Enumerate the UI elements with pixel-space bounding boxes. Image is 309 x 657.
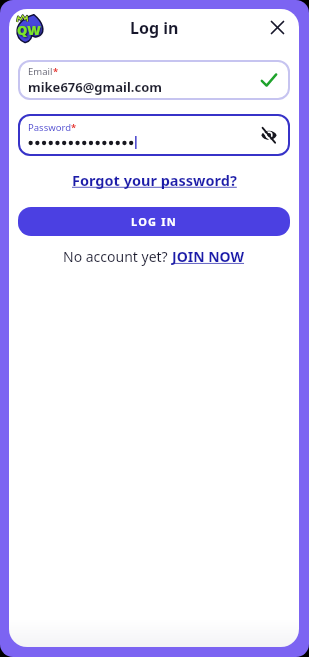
staticText: Log in [130, 17, 179, 39]
button[interactable]: Email [18, 60, 290, 100]
staticText: No account yet? [63, 247, 172, 266]
button[interactable]: Forgot your password? [72, 170, 237, 190]
staticText: LOG IN [131, 214, 177, 229]
button[interactable]: JOIN NOW [172, 247, 245, 266]
staticText: Password [28, 121, 71, 134]
staticText: Email [28, 65, 53, 78]
button[interactable] [270, 20, 285, 35]
staticText: * [71, 121, 77, 134]
staticText: mike676@gmail.com [28, 78, 162, 96]
staticText: * [53, 65, 59, 78]
button[interactable]: Password [18, 114, 290, 156]
button[interactable]: LOG IN [18, 207, 290, 236]
staticText: QW [17, 21, 41, 39]
